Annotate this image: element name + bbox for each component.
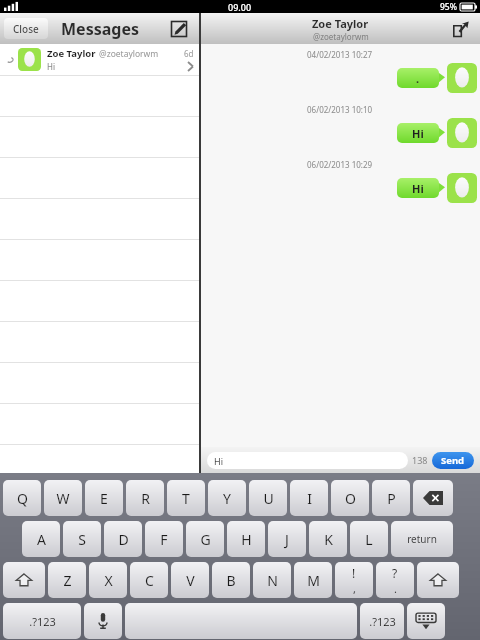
staticText: J [285,530,289,549]
button[interactable]: I [290,480,328,516]
button[interactable]: Compose [167,17,191,41]
button[interactable]: Q [3,480,41,516]
button[interactable]: E [85,480,123,516]
button[interactable]: Hi [407,123,429,143]
button[interactable]: J [268,521,306,557]
staticText: ? [392,565,398,581]
button[interactable]: ! [335,562,373,598]
staticText: @zoetaylorwm [313,31,369,42]
button[interactable]: P [372,480,410,516]
button[interactable]: L [350,521,388,557]
staticText: C [145,571,154,590]
staticText: F [160,530,168,549]
staticText: Q [17,489,28,508]
staticText: E [100,489,108,508]
staticText: Send [441,454,465,467]
button[interactable]: Z [48,562,86,598]
button[interactable]: .?123 [3,603,81,639]
button[interactable]: Send [441,452,465,469]
staticText: L [365,530,373,549]
button[interactable]: Y [208,480,246,516]
staticText: K [324,530,333,549]
button[interactable]: U [249,480,287,516]
staticText: Zoe Taylor [47,47,96,60]
staticText: W [56,489,70,508]
staticText: S [78,530,86,549]
button[interactable]: K [309,521,347,557]
button[interactable]: Zoe Taylor [0,44,199,75]
button[interactable]: Share [449,17,473,41]
button[interactable]: C [130,562,168,598]
staticText: 95% [440,1,457,13]
staticText: . [416,71,420,86]
button[interactable]: Shift [3,562,45,598]
staticText: return [407,532,437,546]
button[interactable]: D [104,521,142,557]
staticText: 6d [184,48,194,59]
staticText: O [345,489,356,508]
button[interactable]: .?123 [360,603,404,639]
staticText: I [307,489,312,508]
button[interactable]: M [294,562,332,598]
button[interactable]: R [126,480,164,516]
button[interactable]: F [145,521,183,557]
staticText: V [186,571,195,590]
staticText: Messages [61,18,139,40]
staticText: D [118,530,129,549]
button[interactable]: S [63,521,101,557]
staticText: 09.00 [228,1,252,13]
staticText: M [307,571,320,590]
staticText: Hi [412,181,424,196]
staticText: .?123 [29,614,56,629]
button[interactable]: A [22,521,60,557]
staticText: .?123 [369,614,396,629]
button[interactable]: H [227,521,265,557]
staticText: B [226,571,236,590]
staticText: A [37,530,46,549]
button[interactable]: B [212,562,250,598]
staticText: , [353,581,356,596]
button[interactable]: Close [13,18,39,39]
staticText: 138 [412,454,428,466]
staticText: Z [63,571,72,590]
button[interactable]: G [186,521,224,557]
button[interactable]: . [407,68,429,88]
button[interactable]: return [391,521,453,557]
staticText: Close [13,22,39,36]
button[interactable]: Backspace [413,480,453,516]
button[interactable] [125,603,357,639]
button[interactable]: T [167,480,205,516]
staticText: 04/02/2013 10:27 [307,49,373,60]
staticText: Hi [412,126,424,141]
button[interactable]: X [89,562,127,598]
button[interactable]: W [44,480,82,516]
button[interactable]: Shift [417,562,459,598]
button[interactable]: ? [376,562,414,598]
staticText: 06/02/2013 10:10 [307,104,373,115]
button[interactable]: Hide keyboard [407,603,445,639]
staticText: H [241,530,252,549]
staticText: U [263,489,274,508]
staticText: N [267,571,278,590]
button[interactable]: Hi [214,452,408,469]
button[interactable]: N [253,562,291,598]
button[interactable]: Hi [407,178,429,198]
staticText: ! [352,565,356,581]
staticText: T [182,489,190,508]
staticText: R [141,489,150,508]
staticText: 06/02/2013 10:29 [307,159,373,170]
staticText: Hi [47,61,55,72]
staticText: Y [223,489,231,508]
staticText: P [387,489,396,508]
button[interactable]: V [171,562,209,598]
button[interactable]: Dictate [84,603,122,639]
staticText: Zoe Taylor [312,16,369,31]
staticText: X [104,571,113,590]
staticText: G [200,530,211,549]
staticText: . [394,581,397,596]
button[interactable]: O [331,480,369,516]
staticText: Hi [214,455,223,467]
staticText: @zoetaylorwm [99,48,159,60]
